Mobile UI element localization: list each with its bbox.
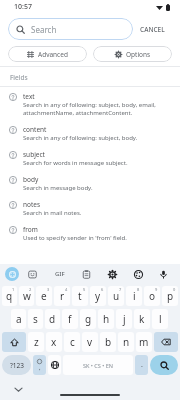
staticText: z [34,335,39,349]
staticText: subject [23,150,45,159]
button[interactable]: w [19,286,34,306]
staticText: from [23,225,38,234]
staticText: 5 [83,287,86,292]
staticText: i [133,289,136,303]
staticText: text [23,92,35,101]
button[interactable]: f [62,309,78,329]
staticText: p [167,289,174,303]
staticText: 4 [65,287,68,292]
staticText: 1 [12,287,15,292]
button[interactable]: Backspace [154,332,178,352]
staticText: GIF [55,270,65,278]
button[interactable]: ?123 [2,355,31,375]
staticText: , [39,364,41,372]
button[interactable]: t [72,286,88,306]
button[interactable]: a [11,309,26,329]
button[interactable]: Advanced [8,46,87,62]
staticText: k [139,312,145,326]
button[interactable]: CANCEL [133,21,172,38]
button[interactable]: z [28,332,44,352]
button[interactable]: y [90,286,106,306]
button[interactable]: Keyboard settings [5,267,19,281]
staticText: notes [23,200,41,209]
button[interactable]: Themes [125,270,151,279]
staticText: d [49,312,56,326]
staticText: Search for words in message subject. [23,159,128,167]
staticText: u [113,289,120,303]
button[interactable]: . [135,355,148,375]
button[interactable]: r [54,286,70,306]
button[interactable]: Voice input [151,270,175,279]
button[interactable]: m [136,332,152,352]
staticText: content [23,125,47,134]
button[interactable]: k [134,309,150,329]
button[interactable]: body [0,170,180,195]
button[interactable]: Change language [48,355,61,375]
staticText: Options [126,50,151,59]
button[interactable]: p [162,286,178,306]
button[interactable]: content [0,120,180,145]
button[interactable]: GIF [46,270,73,278]
staticText: f [68,312,72,326]
staticText: t [78,289,82,303]
staticText: 7 [119,287,122,292]
staticText: ?123 [10,361,24,370]
button[interactable]: q [2,286,17,306]
button[interactable]: n [118,332,134,352]
staticText: 10:57 [14,2,32,12]
button[interactable]: u [108,286,124,306]
staticText: j [123,312,126,326]
button[interactable]: b [100,332,116,352]
button[interactable]: i [126,286,142,306]
button[interactable]: notes [0,195,180,220]
button[interactable]: Shift [2,332,26,352]
staticText: 9 [155,287,158,292]
button[interactable]: o [144,286,160,306]
staticText: Search in message body. [23,184,93,192]
staticText: a [16,312,22,326]
button[interactable]: j [116,309,132,329]
staticText: 6 [101,287,104,292]
staticText: q [6,289,13,303]
staticText: Advanced [38,50,68,59]
staticText: 0 [173,287,176,292]
button[interactable]: text [0,87,180,120]
button[interactable]: Clipboard [73,270,99,279]
button[interactable]: Emoji and comma [33,355,46,375]
staticText: 2 [29,287,32,292]
staticText: Fields [10,73,28,82]
button[interactable]: h [98,309,114,329]
button[interactable]: subject [0,145,180,170]
button[interactable]: l [152,309,168,329]
button[interactable]: SK • CS • EN [63,355,133,375]
button[interactable]: g [80,309,96,329]
staticText: Used to specify sender in 'from' field. [23,234,127,242]
button[interactable]: d [45,309,60,329]
button[interactable]: v [82,332,98,352]
staticText: l [159,312,162,326]
button[interactable]: Options [93,46,172,62]
staticText: . [141,360,143,370]
button[interactable]: x [46,332,62,352]
button[interactable]: Stickers [19,270,46,279]
staticText: CANCEL [140,25,165,34]
staticText: e [41,289,47,303]
staticText: g [85,312,92,326]
staticText: 8 [137,287,140,292]
staticText: s [33,312,38,326]
button[interactable]: e [36,286,52,306]
staticText: b [105,335,112,349]
staticText: Search in any of following: subject, bod… [23,101,156,117]
button[interactable]: c [64,332,80,352]
button[interactable]: Settings [99,270,125,279]
button[interactable]: Hide keyboard [12,383,24,395]
staticText: o [149,289,156,303]
staticText: SK • CS • EN [83,362,114,369]
button[interactable]: s [28,309,43,329]
staticText: n [123,335,130,349]
staticText: v [87,335,93,349]
button[interactable]: Search [150,355,178,375]
staticText: h [103,312,110,326]
button[interactable]: from [0,220,180,245]
button[interactable]: Search [8,18,133,40]
